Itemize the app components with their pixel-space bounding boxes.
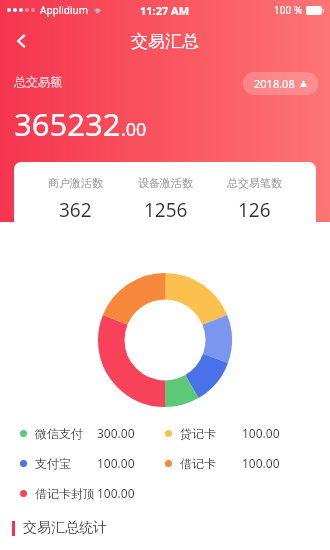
staticText: 100.00 bbox=[97, 485, 135, 501]
staticText: Applidium bbox=[40, 3, 89, 17]
button[interactable]: 贷记卡 bbox=[165, 425, 280, 441]
button[interactable]: 支付宝 bbox=[20, 455, 135, 471]
staticText: 交易汇总统计 bbox=[23, 519, 107, 537]
staticText: 300.00 bbox=[97, 425, 135, 441]
button[interactable]: Back bbox=[0, 20, 44, 62]
staticText: 362 bbox=[59, 197, 92, 223]
staticText: 借记卡封顶 bbox=[35, 486, 97, 501]
button[interactable]: 2018.08 bbox=[243, 72, 318, 95]
staticText: 11:27 AM bbox=[140, 3, 190, 18]
staticText: 100.00 bbox=[242, 455, 280, 471]
staticText: 100.00 bbox=[97, 455, 135, 471]
staticText: 贷记卡 bbox=[180, 426, 242, 441]
button[interactable]: 借记卡封顶 bbox=[20, 485, 135, 501]
staticText: .00 bbox=[121, 117, 147, 142]
staticText: 商户激活数 bbox=[48, 176, 103, 190]
staticText: 2018.08 bbox=[254, 76, 295, 91]
staticText: 1256 bbox=[144, 197, 188, 223]
staticText: 365232 bbox=[14, 103, 121, 145]
staticText: 100.00 bbox=[242, 425, 280, 441]
button[interactable]: 借记卡 bbox=[165, 455, 280, 471]
staticText: 支付宝 bbox=[35, 456, 97, 471]
staticText: 交易汇总 bbox=[131, 31, 199, 52]
staticText: 总交易笔数 bbox=[227, 176, 282, 190]
staticText: 100 % bbox=[274, 3, 303, 17]
staticText: 总交易额 bbox=[14, 74, 62, 89]
button[interactable]: 微信支付 bbox=[20, 425, 135, 441]
staticText: 微信支付 bbox=[35, 426, 97, 441]
staticText: 设备激活数 bbox=[138, 176, 193, 190]
staticText: 借记卡 bbox=[180, 456, 242, 471]
staticText: 126 bbox=[238, 197, 271, 223]
